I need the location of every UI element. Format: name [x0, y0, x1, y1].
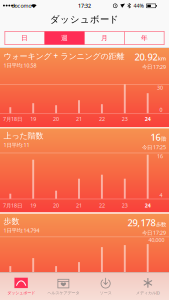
staticText: ソース: [100, 290, 112, 295]
staticText: 月: [101, 34, 108, 42]
staticText: 19: [30, 115, 36, 123]
staticText: 4: [159, 192, 162, 199]
staticText: 今日 17:29: [142, 229, 166, 236]
staticText: 20: [53, 202, 59, 209]
staticText: 1日平均: 10.58: [3, 62, 36, 69]
staticText: 16: [157, 153, 163, 160]
staticText: 週: [61, 34, 68, 42]
staticText: 21: [76, 202, 82, 209]
staticText: 7月18日: [3, 202, 22, 209]
staticText: 19: [30, 202, 36, 209]
staticText: 24: [145, 115, 151, 123]
staticText: 1日平均: 11: [3, 141, 29, 148]
staticText: 今日 17:25: [142, 144, 166, 151]
staticText: 7月18日: [3, 115, 22, 123]
button[interactable]: ダッシュボード: [0, 272, 42, 300]
staticText: 23: [122, 202, 128, 209]
staticText: ウォーキング + ランニングの距離: [3, 51, 124, 61]
staticText: 21: [76, 115, 82, 123]
staticText: 40,000: [148, 236, 164, 244]
staticText: 29,178: [127, 216, 155, 229]
button[interactable]: ウォーキング + ランニングの距離: [0, 48, 169, 127]
staticText: 44%: [133, 2, 143, 9]
staticText: 23: [122, 115, 128, 123]
staticText: 歩数: [156, 221, 166, 228]
staticText: 17:32: [78, 2, 91, 9]
staticText: 日: [21, 34, 28, 42]
button[interactable]: 年: [124, 31, 164, 45]
staticText: 16: [150, 131, 160, 143]
staticText: 20: [53, 115, 59, 123]
button[interactable]: ソース: [84, 272, 127, 300]
button[interactable]: 上った階数: [0, 128, 169, 212]
staticText: 年: [141, 34, 148, 42]
staticText: 20.92: [134, 51, 157, 63]
staticText: ダッシュボード: [50, 14, 119, 25]
button[interactable]: ヘルスケアデータ: [42, 272, 84, 300]
staticText: 22: [99, 115, 105, 123]
staticText: ダッシュボード: [7, 290, 35, 295]
staticText: メディカルID: [136, 290, 160, 295]
staticText: docomo: [11, 2, 31, 9]
staticText: 上った階数: [3, 131, 43, 141]
staticText: 30: [157, 84, 163, 91]
button[interactable]: メディカルID: [127, 272, 169, 300]
button[interactable]: 月: [84, 31, 124, 45]
staticText: 1日平均: 14,794: [3, 227, 39, 234]
staticText: 階: [161, 136, 166, 142]
staticText: ヘルスケアデータ: [47, 290, 79, 295]
button[interactable]: 日: [4, 31, 44, 45]
staticText: 歩数: [3, 216, 19, 226]
staticText: 今日 17:29: [142, 63, 166, 70]
button[interactable]: 歩数: [0, 214, 169, 272]
staticText: 0: [159, 106, 162, 113]
staticText: 24: [145, 202, 151, 209]
button[interactable]: 週: [44, 31, 84, 45]
staticText: 22: [99, 202, 105, 209]
staticText: km: [158, 55, 166, 62]
